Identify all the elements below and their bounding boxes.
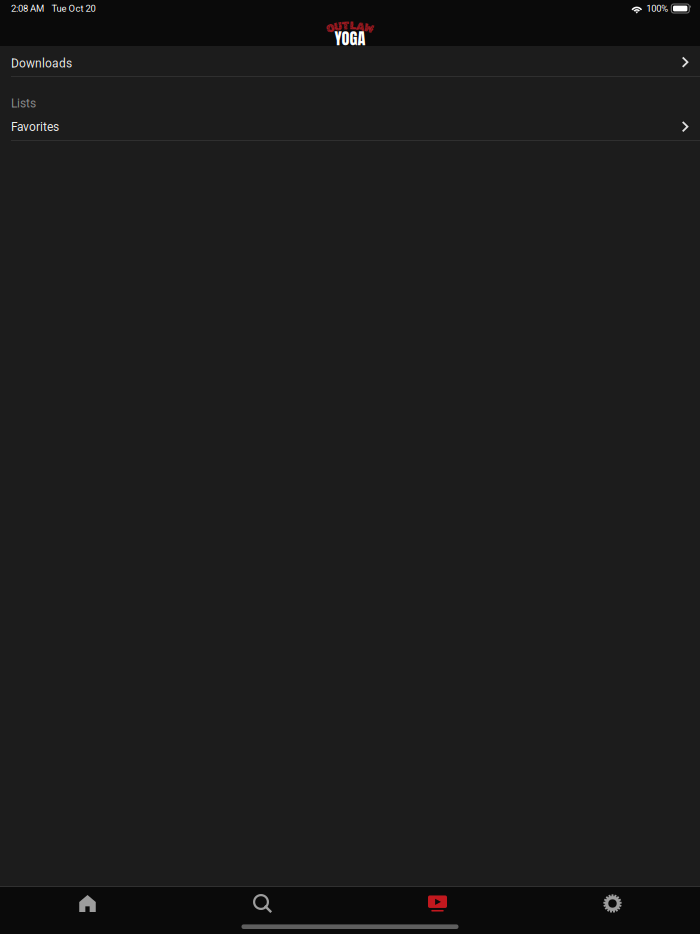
button[interactable]: Home: [0, 888, 175, 919]
staticText: Lists: [11, 96, 36, 111]
staticText: W: [364, 22, 374, 35]
staticText: Downloads: [11, 56, 72, 71]
button[interactable]: Favorites: [0, 113, 700, 140]
staticText: Tue Oct 20: [51, 3, 95, 14]
staticText: A: [356, 20, 364, 33]
button[interactable]: Search: [175, 888, 350, 919]
staticText: Favorites: [11, 120, 59, 134]
staticText: U: [334, 20, 342, 33]
staticText: L: [349, 19, 356, 32]
staticText: T: [342, 19, 350, 32]
button[interactable]: Videos: [350, 888, 525, 919]
staticText: 100%: [646, 3, 668, 14]
button[interactable]: Settings: [525, 888, 700, 919]
staticText: YOGA: [334, 26, 365, 50]
button[interactable]: Downloads: [0, 46, 700, 76]
staticText: O: [326, 22, 334, 35]
staticText: 2:08 AM: [11, 3, 44, 14]
